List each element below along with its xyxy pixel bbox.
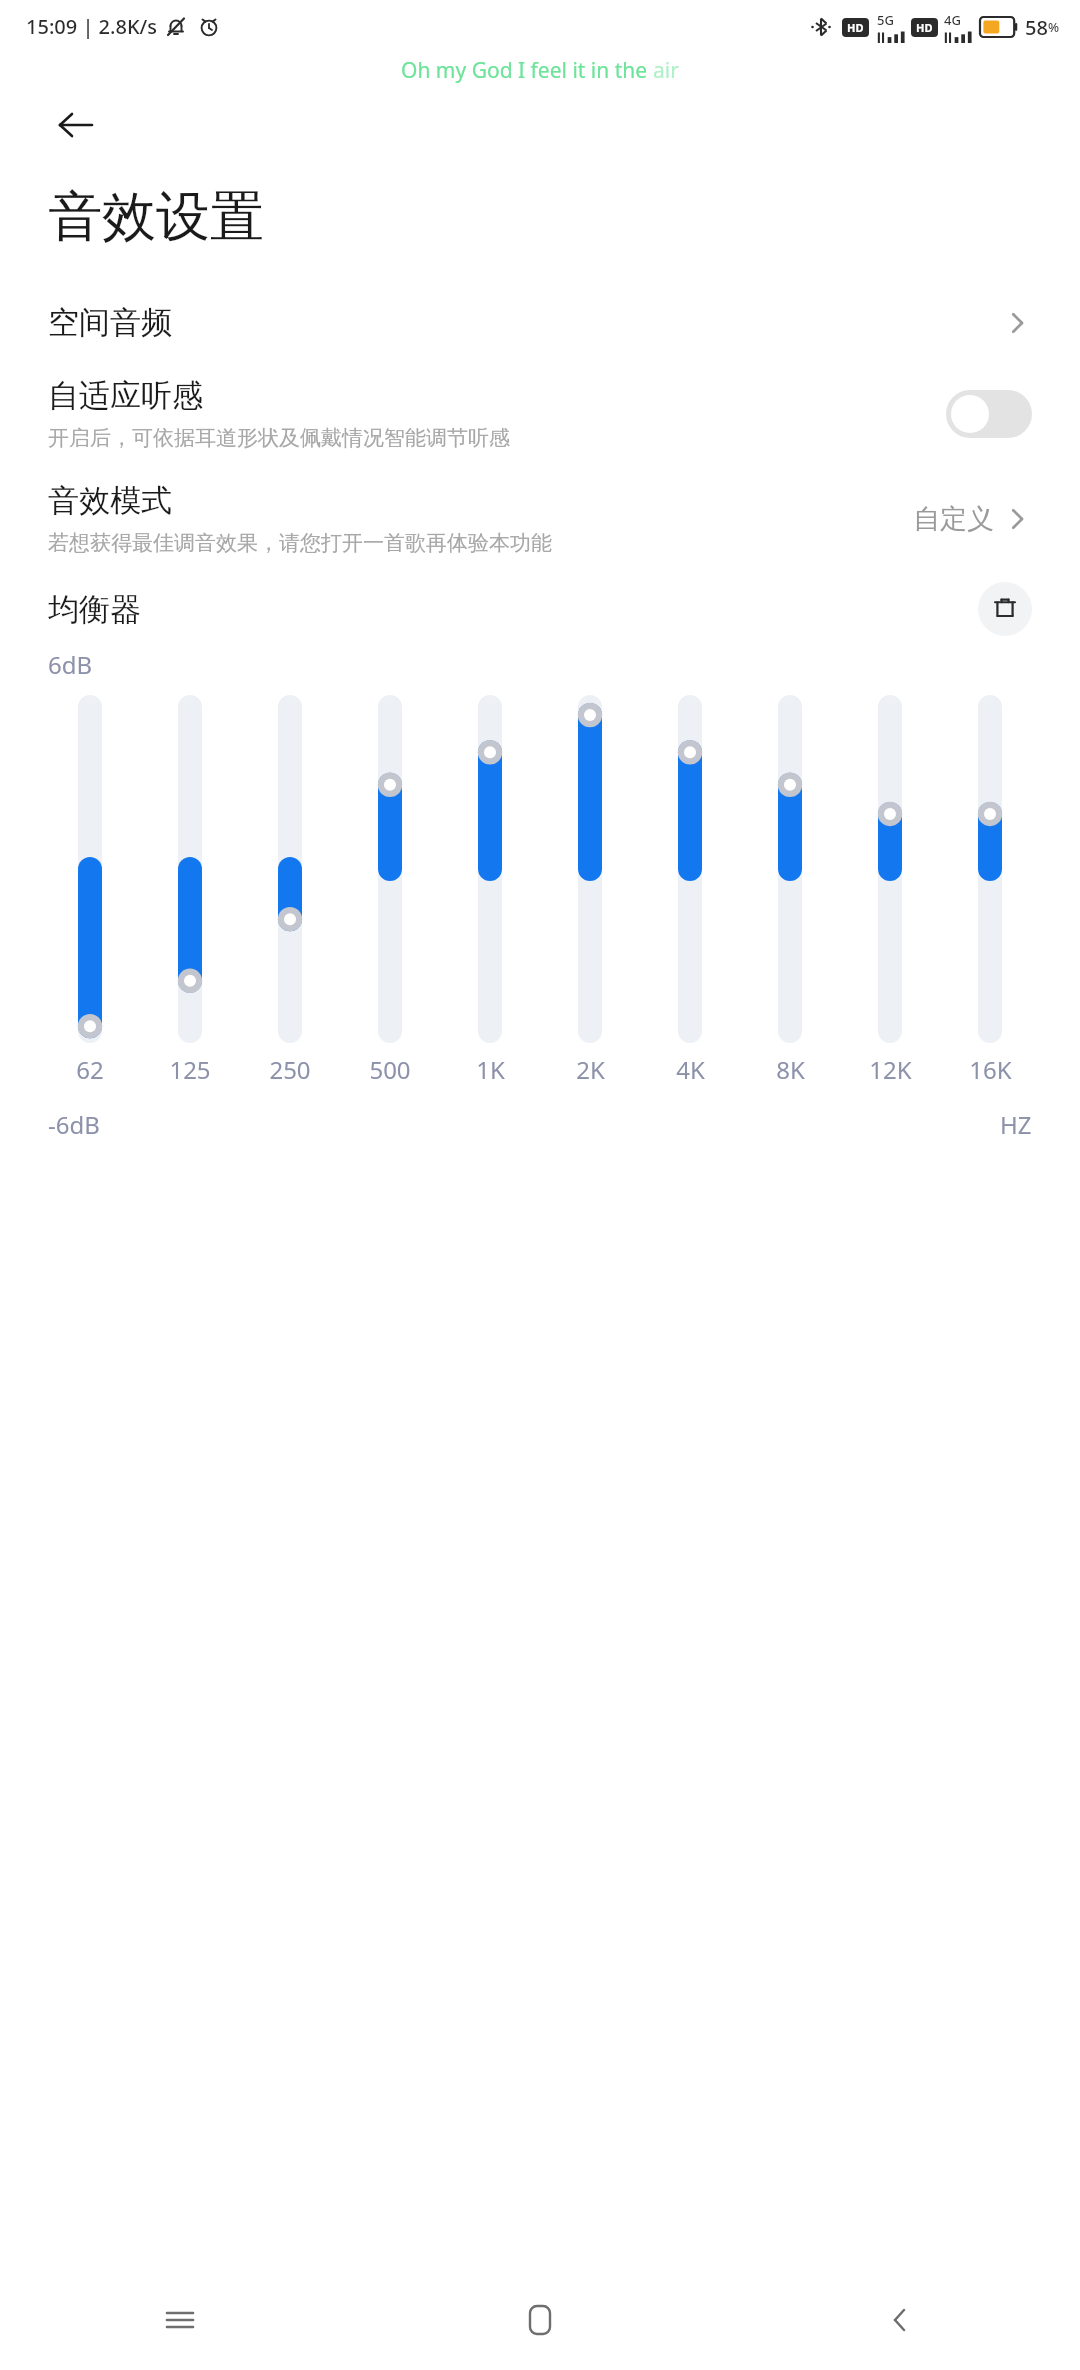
staticText: 62 [76, 1053, 104, 1086]
staticText: 16K [969, 1053, 1012, 1086]
staticText: 均衡器 [48, 590, 141, 629]
button[interactable]: Reset equalizer [978, 582, 1032, 636]
staticText: air [653, 56, 679, 85]
staticText: 5G [877, 11, 894, 29]
staticText: 音效设置 [48, 183, 264, 251]
staticText: 4G [944, 11, 961, 29]
button[interactable]: Adaptive listening toggle [946, 390, 1032, 438]
button[interactable]: Back [720, 2270, 1080, 2370]
button[interactable]: Recents [0, 2270, 360, 2370]
button[interactable]: 音效模式 [0, 477, 1080, 560]
staticText: 若想获得最佳调音效果，请您打开一首歌再体验本功能 [48, 530, 552, 556]
button[interactable]: 自适应听感 [0, 372, 1080, 455]
staticText: 开启后，可依据耳道形状及佩戴情况智能调节听感 [48, 425, 510, 451]
staticText: 自定义 [913, 502, 994, 536]
staticText: 4K [676, 1053, 705, 1086]
staticText: -6dB [48, 1108, 100, 1141]
staticText: Oh my God I feel it in the [401, 56, 653, 85]
staticText: 自适应听感 [48, 376, 203, 415]
button[interactable]: Back [48, 97, 104, 153]
staticText: 空间音频 [48, 303, 172, 342]
staticText: 2K [576, 1053, 605, 1086]
staticText: 8K [776, 1053, 805, 1086]
staticText: HD [847, 20, 864, 35]
staticText: 58 [1025, 14, 1048, 41]
button[interactable]: 空间音频 [0, 297, 1080, 348]
staticText: HD [916, 20, 933, 35]
staticText: 6dB [48, 648, 93, 681]
staticText: 1K [476, 1053, 505, 1086]
staticText: 125 [169, 1053, 211, 1086]
staticText: HZ [1000, 1108, 1032, 1141]
staticText: 250 [269, 1053, 311, 1086]
staticText: 12K [869, 1053, 912, 1086]
staticText: 音效模式 [48, 481, 172, 520]
staticText: % [1048, 18, 1060, 36]
staticText: 500 [369, 1053, 411, 1086]
button[interactable]: Home [360, 2270, 720, 2370]
staticText: 15:09 | 2.8K/s [26, 13, 157, 40]
